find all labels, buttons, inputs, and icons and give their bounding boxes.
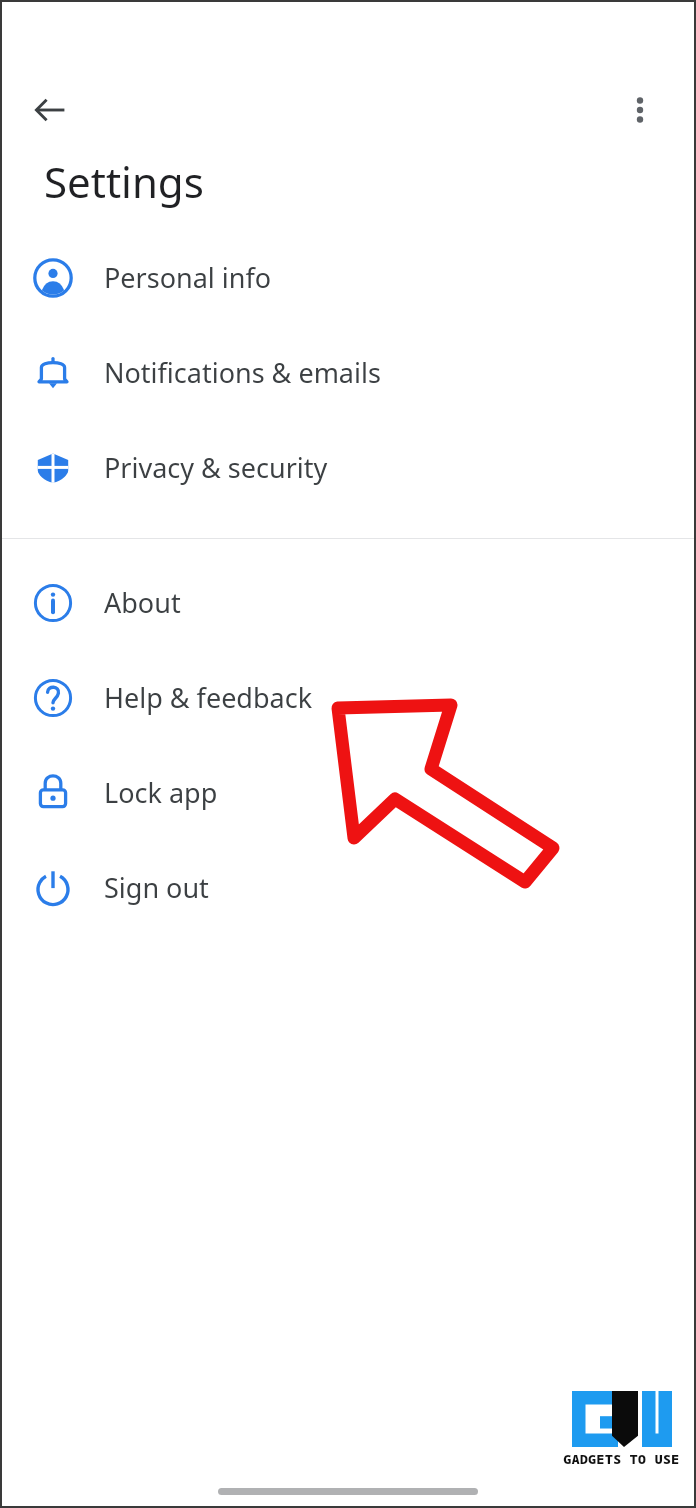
staticText: Lock app (104, 774, 218, 811)
staticText: About (104, 584, 181, 621)
staticText: Privacy & security (104, 449, 328, 486)
button[interactable]: Lock app (2, 745, 694, 840)
button[interactable]: About (2, 555, 694, 650)
button[interactable]: Privacy & security (2, 420, 694, 515)
staticText: Notifications & emails (104, 354, 381, 391)
staticText: Sign out (104, 869, 209, 906)
staticText: Personal info (104, 259, 272, 296)
button[interactable]: Back (24, 84, 76, 136)
staticText: Settings (44, 153, 204, 210)
button[interactable]: Notifications & emails (2, 325, 694, 420)
button[interactable]: Help & feedback (2, 650, 694, 745)
button[interactable]: Sign out (2, 840, 694, 935)
button[interactable]: More options (614, 84, 666, 136)
button[interactable]: Personal info (2, 230, 694, 325)
staticText: Help & feedback (104, 679, 313, 716)
staticText: GADGETS TO USE (563, 1450, 680, 1468)
